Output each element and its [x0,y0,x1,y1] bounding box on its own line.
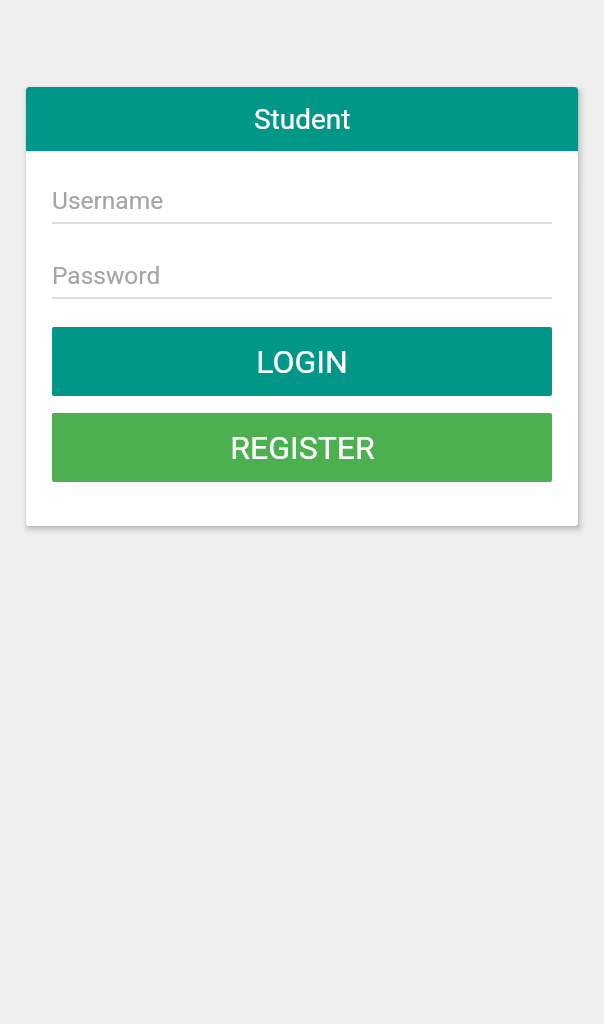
staticText: REGISTER [230,429,375,467]
button[interactable]: Password [52,261,552,299]
staticText: Username [52,186,164,215]
staticText: Password [52,261,161,290]
button[interactable]: REGISTER [52,413,552,482]
button[interactable]: LOGIN [52,327,552,396]
staticText: LOGIN [256,343,348,381]
button[interactable]: Username [52,186,552,224]
staticText: Student [254,103,351,136]
